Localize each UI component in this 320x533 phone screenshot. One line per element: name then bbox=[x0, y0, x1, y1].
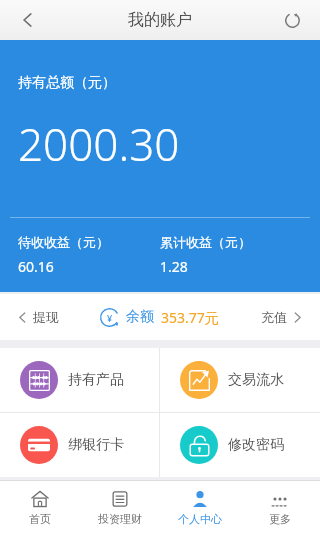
staticText: 1.28 bbox=[160, 257, 188, 276]
staticText: 持有产品 bbox=[68, 371, 124, 389]
button[interactable]: Refresh bbox=[272, 0, 312, 40]
button[interactable]: 个人中心 bbox=[160, 481, 240, 533]
button[interactable]: ¥ bbox=[100, 294, 219, 340]
staticText: 投资理财 bbox=[98, 512, 142, 526]
staticText: 交易流水 bbox=[228, 371, 284, 389]
staticText: 353.77元 bbox=[161, 308, 219, 327]
staticText: 绑银行卡 bbox=[68, 436, 124, 454]
button[interactable]: Back bbox=[8, 0, 48, 40]
button[interactable]: 更多 bbox=[240, 481, 320, 533]
staticText: 2000.30 bbox=[18, 114, 180, 174]
button[interactable]: 持有产品 bbox=[0, 348, 159, 412]
staticText: 待收收益（元） bbox=[18, 234, 109, 250]
button[interactable]: 交易流水 bbox=[160, 348, 320, 412]
button[interactable]: 修改密码 bbox=[160, 413, 320, 477]
staticText: 我的账户 bbox=[128, 10, 192, 30]
staticText: 首页 bbox=[29, 512, 51, 526]
staticText: 提现 bbox=[33, 309, 59, 325]
button[interactable]: 提现 bbox=[0, 294, 67, 340]
staticText: 修改密码 bbox=[228, 436, 284, 454]
staticText: 余额 bbox=[126, 308, 154, 326]
button[interactable]: 绑银行卡 bbox=[0, 413, 159, 477]
staticText: 60.16 bbox=[18, 257, 54, 276]
staticText: 更多 bbox=[269, 512, 291, 526]
staticText: 持有总额（元） bbox=[18, 74, 116, 92]
staticText: 累计收益（元） bbox=[160, 234, 251, 250]
button[interactable]: 投资理财 bbox=[80, 481, 160, 533]
staticText: ¥ bbox=[107, 312, 113, 324]
button[interactable]: 充值 bbox=[253, 294, 320, 340]
staticText: 充值 bbox=[261, 309, 287, 325]
button[interactable]: 首页 bbox=[0, 481, 80, 533]
staticText: 个人中心 bbox=[178, 512, 222, 526]
